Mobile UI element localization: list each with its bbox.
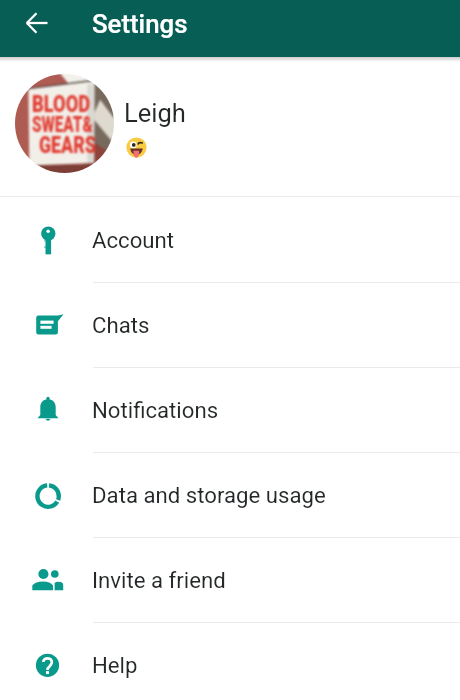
staticText: Notifications: [92, 397, 219, 423]
button[interactable]: Data and storage usage: [0, 453, 460, 537]
button[interactable]: BLOOD: [0, 62, 460, 196]
staticText: Chats: [92, 312, 150, 338]
button[interactable]: Help: [0, 623, 460, 700]
staticText: Leigh: [124, 98, 186, 128]
staticText: Account: [92, 227, 175, 253]
staticText: GEARS: [39, 131, 96, 159]
staticText: Settings: [92, 9, 188, 39]
staticText: Invite a friend: [92, 567, 226, 593]
button[interactable]: Account: [0, 197, 460, 282]
button[interactable]: Notifications: [0, 368, 460, 452]
staticText: BLOOD: [32, 90, 90, 118]
button[interactable]: Invite a friend: [0, 538, 460, 622]
staticText: SWEAT&: [32, 112, 93, 137]
button[interactable]: Chats: [0, 283, 460, 367]
staticText: Data and storage usage: [92, 482, 326, 508]
staticText: Help: [92, 652, 138, 678]
button[interactable]: Back: [11, 0, 63, 46]
